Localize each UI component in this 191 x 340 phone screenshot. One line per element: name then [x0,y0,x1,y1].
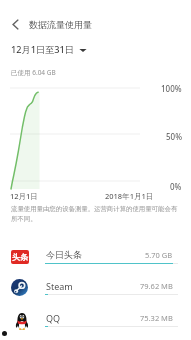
staticText: Steam [46,280,73,292]
staticText: 流量使用量由您的设备测量。运营商计算的使用量可能会有所不同。 [11,205,182,223]
staticText: QQ [46,312,61,324]
staticText: 12月1日至31日 [11,43,75,56]
button[interactable]: 头条 [0,243,191,272]
button[interactable]: Back [4,13,27,36]
staticText: 100% [161,83,182,94]
button[interactable]: QQ [0,306,191,335]
button[interactable]: Steam [0,274,191,303]
staticText: 2018年1月1日 [105,191,154,201]
staticText: 已使用 6.04 GB [11,68,56,77]
staticText: 今日头条 [46,249,82,260]
staticText: 79.62 MB [140,281,173,291]
staticText: 头条 [12,252,28,262]
staticText: 5.70 GB [145,250,173,260]
staticText: 0% [170,181,182,192]
staticText: 12月1日 [10,191,38,201]
staticText: 数据流量使用量 [29,19,92,30]
staticText: 50% [166,131,182,142]
staticText: 75.32 MB [140,313,173,323]
button[interactable]: 12月1日至31日 [11,43,87,56]
